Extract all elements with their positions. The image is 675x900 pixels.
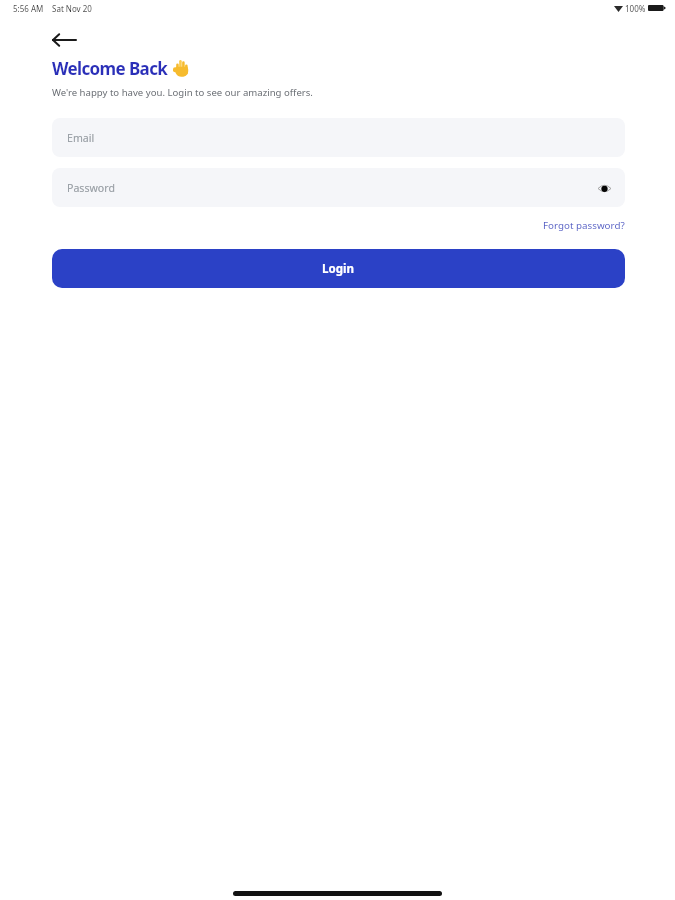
button[interactable]: Password — [52, 168, 625, 207]
button[interactable]: Email — [52, 118, 625, 157]
staticText: Sat Nov 20 — [52, 3, 92, 14]
staticText: Welcome Back — [52, 57, 168, 80]
staticText: 100% — [625, 3, 646, 14]
staticText: Email — [67, 131, 95, 145]
staticText: We're happy to have you. Login to see ou… — [52, 86, 313, 99]
button[interactable]: Forgot password? — [539, 216, 629, 235]
staticText: Password — [67, 181, 115, 195]
button[interactable]: Back — [42, 26, 86, 54]
button[interactable]: Show password — [593, 177, 615, 199]
staticText: Forgot password? — [543, 219, 625, 232]
staticText: Login — [322, 261, 355, 277]
staticText: 5:56 AM — [13, 3, 44, 14]
button[interactable]: Login — [52, 249, 625, 288]
